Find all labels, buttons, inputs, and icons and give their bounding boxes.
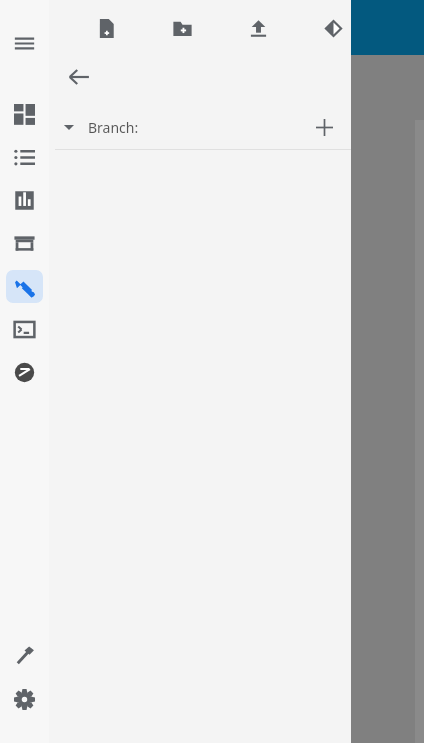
button[interactable]: Upload: [239, 9, 277, 47]
button[interactable]: Terminal: [6, 313, 43, 346]
button[interactable]: Lists: [6, 141, 43, 174]
button[interactable]: Build: [6, 640, 43, 673]
button[interactable]: Tools: [6, 270, 43, 303]
button[interactable]: New folder: [163, 9, 201, 47]
button[interactable]: Back: [57, 55, 101, 99]
button[interactable]: Store: [6, 227, 43, 260]
button[interactable]: Version control: [315, 9, 351, 47]
button[interactable]: New file: [87, 9, 125, 47]
button[interactable]: Status: [6, 356, 43, 389]
button[interactable]: Add branch: [304, 107, 344, 147]
button[interactable]: Menu: [6, 27, 43, 60]
staticText: Branch:: [88, 118, 139, 137]
button[interactable]: Branch:: [49, 105, 351, 149]
button[interactable]: Analytics: [6, 184, 43, 217]
button[interactable]: Settings: [6, 683, 43, 716]
button[interactable]: Dashboard: [6, 98, 43, 131]
